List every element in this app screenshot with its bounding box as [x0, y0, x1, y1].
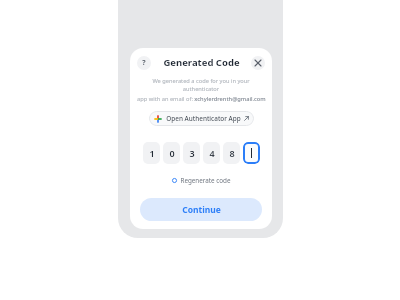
staticText: Generated Code: [163, 56, 240, 69]
staticText: Open Authenticator App: [166, 114, 241, 123]
button[interactable]: 3: [183, 142, 200, 164]
button[interactable]: Enter last digit: [243, 142, 260, 164]
button[interactable]: 1: [143, 142, 160, 164]
button[interactable]: Continue: [140, 198, 262, 221]
staticText: Continue: [182, 204, 221, 216]
staticText: We generated a code for you in your auth…: [136, 77, 266, 93]
button[interactable]: 8: [223, 142, 240, 164]
staticText: ?: [142, 58, 146, 68]
staticText: Regenerate code: [180, 176, 231, 185]
button[interactable]: Help: [137, 56, 151, 70]
staticText: 3: [189, 147, 195, 159]
staticText: app with an email of:: [136, 95, 194, 103]
staticText: 0: [169, 147, 175, 159]
staticText: 4: [209, 147, 215, 159]
staticText: xchylerdrenth@gmail.com: [194, 95, 266, 103]
button[interactable]: Regenerate code: [169, 175, 234, 186]
button[interactable]: 4: [203, 142, 220, 164]
staticText: 8: [229, 147, 235, 159]
button[interactable]: 0: [163, 142, 180, 164]
button[interactable]: Close: [251, 56, 265, 70]
button[interactable]: Open Authenticator App: [149, 111, 254, 126]
staticText: 1: [149, 147, 155, 159]
